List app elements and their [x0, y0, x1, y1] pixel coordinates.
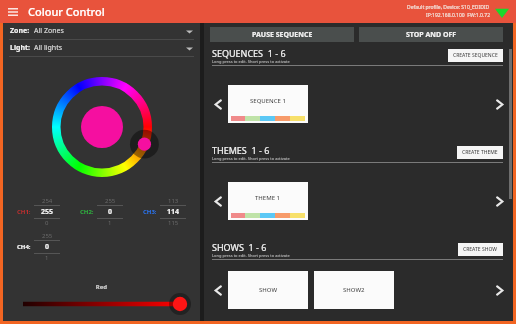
staticText: Red: [3, 283, 200, 291]
staticText: 255: [105, 197, 116, 205]
button[interactable]: Zone:: [3, 23, 200, 39]
staticText: SHOW2: [343, 286, 365, 294]
staticText: PAUSE SEQUENCE: [252, 30, 313, 40]
staticText: 254: [42, 197, 53, 205]
staticText: SEQUENCES 1 - 6: [212, 47, 286, 59]
button[interactable]: Open navigation menu: [6, 5, 20, 19]
staticText: Colour Control: [28, 4, 105, 19]
staticText: 0: [45, 219, 49, 227]
button[interactable]: Previous page: [210, 163, 226, 239]
staticText: Long press to edit. Short press to activ…: [212, 253, 290, 258]
button[interactable]: CH4:: [7, 232, 70, 262]
staticText: 113: [168, 197, 179, 205]
staticText: All lights: [34, 43, 63, 53]
staticText: STOP AND OFF: [406, 30, 457, 40]
staticText: SHOWS 1 - 6: [212, 241, 267, 253]
staticText: CH4:: [17, 243, 31, 251]
staticText: CREATE SEQUENCE: [453, 52, 498, 59]
staticText: 255: [41, 207, 54, 217]
staticText: CH2:: [80, 208, 94, 216]
button[interactable]: PAUSE SEQUENCE: [210, 27, 354, 42]
other: Wi-Fi connected: [494, 4, 510, 20]
button[interactable]: CH1:: [7, 197, 70, 227]
button[interactable]: SHOW2: [314, 271, 394, 309]
button[interactable]: CH2:: [70, 197, 133, 227]
staticText: 0: [45, 242, 50, 252]
staticText: 115: [168, 219, 179, 227]
button[interactable]: CREATE SEQUENCE: [448, 49, 503, 62]
button[interactable]: CREATE SHOW: [458, 243, 503, 256]
staticText: IP:192.168.0.100 FW:1.0.72: [426, 12, 490, 19]
staticText: SEQUENCE 1: [250, 97, 286, 105]
button[interactable]: Light:: [3, 40, 200, 56]
button[interactable]: Previous page: [210, 260, 226, 320]
staticText: 114: [167, 207, 180, 217]
staticText: Light:: [10, 43, 30, 53]
staticText: 1: [108, 219, 112, 227]
staticText: THEME 1: [255, 194, 281, 202]
staticText: CH1:: [17, 208, 31, 216]
staticText: 1: [45, 254, 49, 262]
staticText: All Zones: [34, 26, 64, 36]
staticText: 0: [108, 207, 113, 217]
staticText: Long press to edit. Short press to activ…: [212, 59, 290, 64]
staticText: SHOW: [259, 286, 278, 294]
button[interactable]: CREATE THEME: [457, 146, 503, 159]
staticText: 255: [42, 232, 53, 240]
button[interactable]: Next page: [491, 163, 507, 239]
staticText: Zone:: [10, 26, 30, 36]
button[interactable]: [3, 293, 200, 315]
button[interactable]: Previous page: [210, 66, 226, 142]
staticText: Default profile, Device: S10_EDIDID: [407, 4, 490, 11]
button[interactable]: THEME 1: [228, 182, 308, 220]
staticText: THEMES 1 - 6: [212, 144, 270, 156]
staticText: CREATE THEME: [462, 149, 498, 156]
staticText: CREATE SHOW: [463, 246, 498, 253]
button[interactable]: CH3:: [133, 197, 196, 227]
staticText: CH3:: [143, 208, 157, 216]
button[interactable]: Next page: [491, 260, 507, 320]
staticText: Long press to edit. Short press to activ…: [212, 156, 290, 161]
button[interactable]: SHOW: [228, 271, 308, 309]
button[interactable]: SEQUENCE 1: [228, 85, 308, 123]
button[interactable]: [49, 74, 155, 180]
button[interactable]: STOP AND OFF: [359, 27, 503, 42]
button[interactable]: Next page: [491, 66, 507, 142]
